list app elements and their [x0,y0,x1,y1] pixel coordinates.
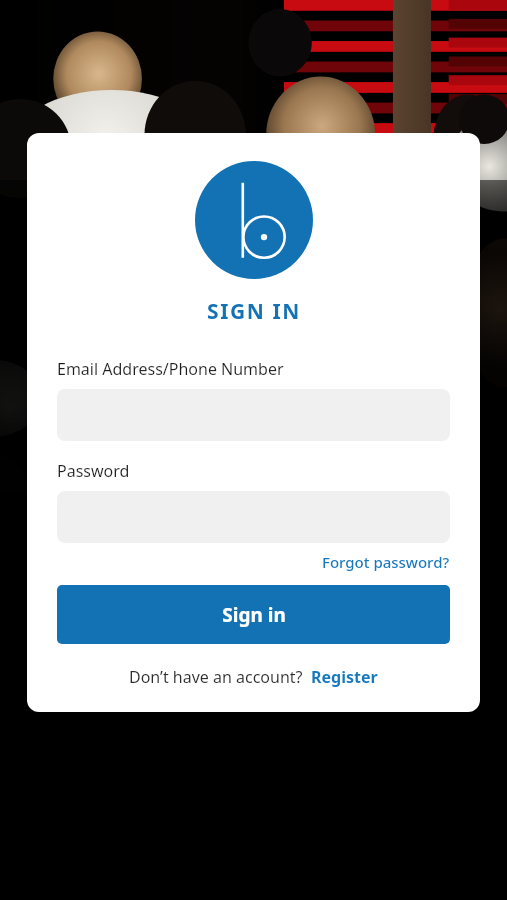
button[interactable]: Sign in [57,585,450,644]
staticText: Email Address/Phone Number [57,358,284,380]
staticText: Register [311,666,378,688]
staticText: Sign in [222,602,286,628]
other: Status bar [0,0,507,22]
button[interactable]: Register [311,666,378,688]
staticText: SIGN IN [207,297,301,326]
staticText: Don’t have an account? [129,666,303,688]
staticText: Forgot password? [322,552,450,572]
button[interactable]: Forgot password? [322,552,450,572]
staticText: Password [57,460,130,482]
